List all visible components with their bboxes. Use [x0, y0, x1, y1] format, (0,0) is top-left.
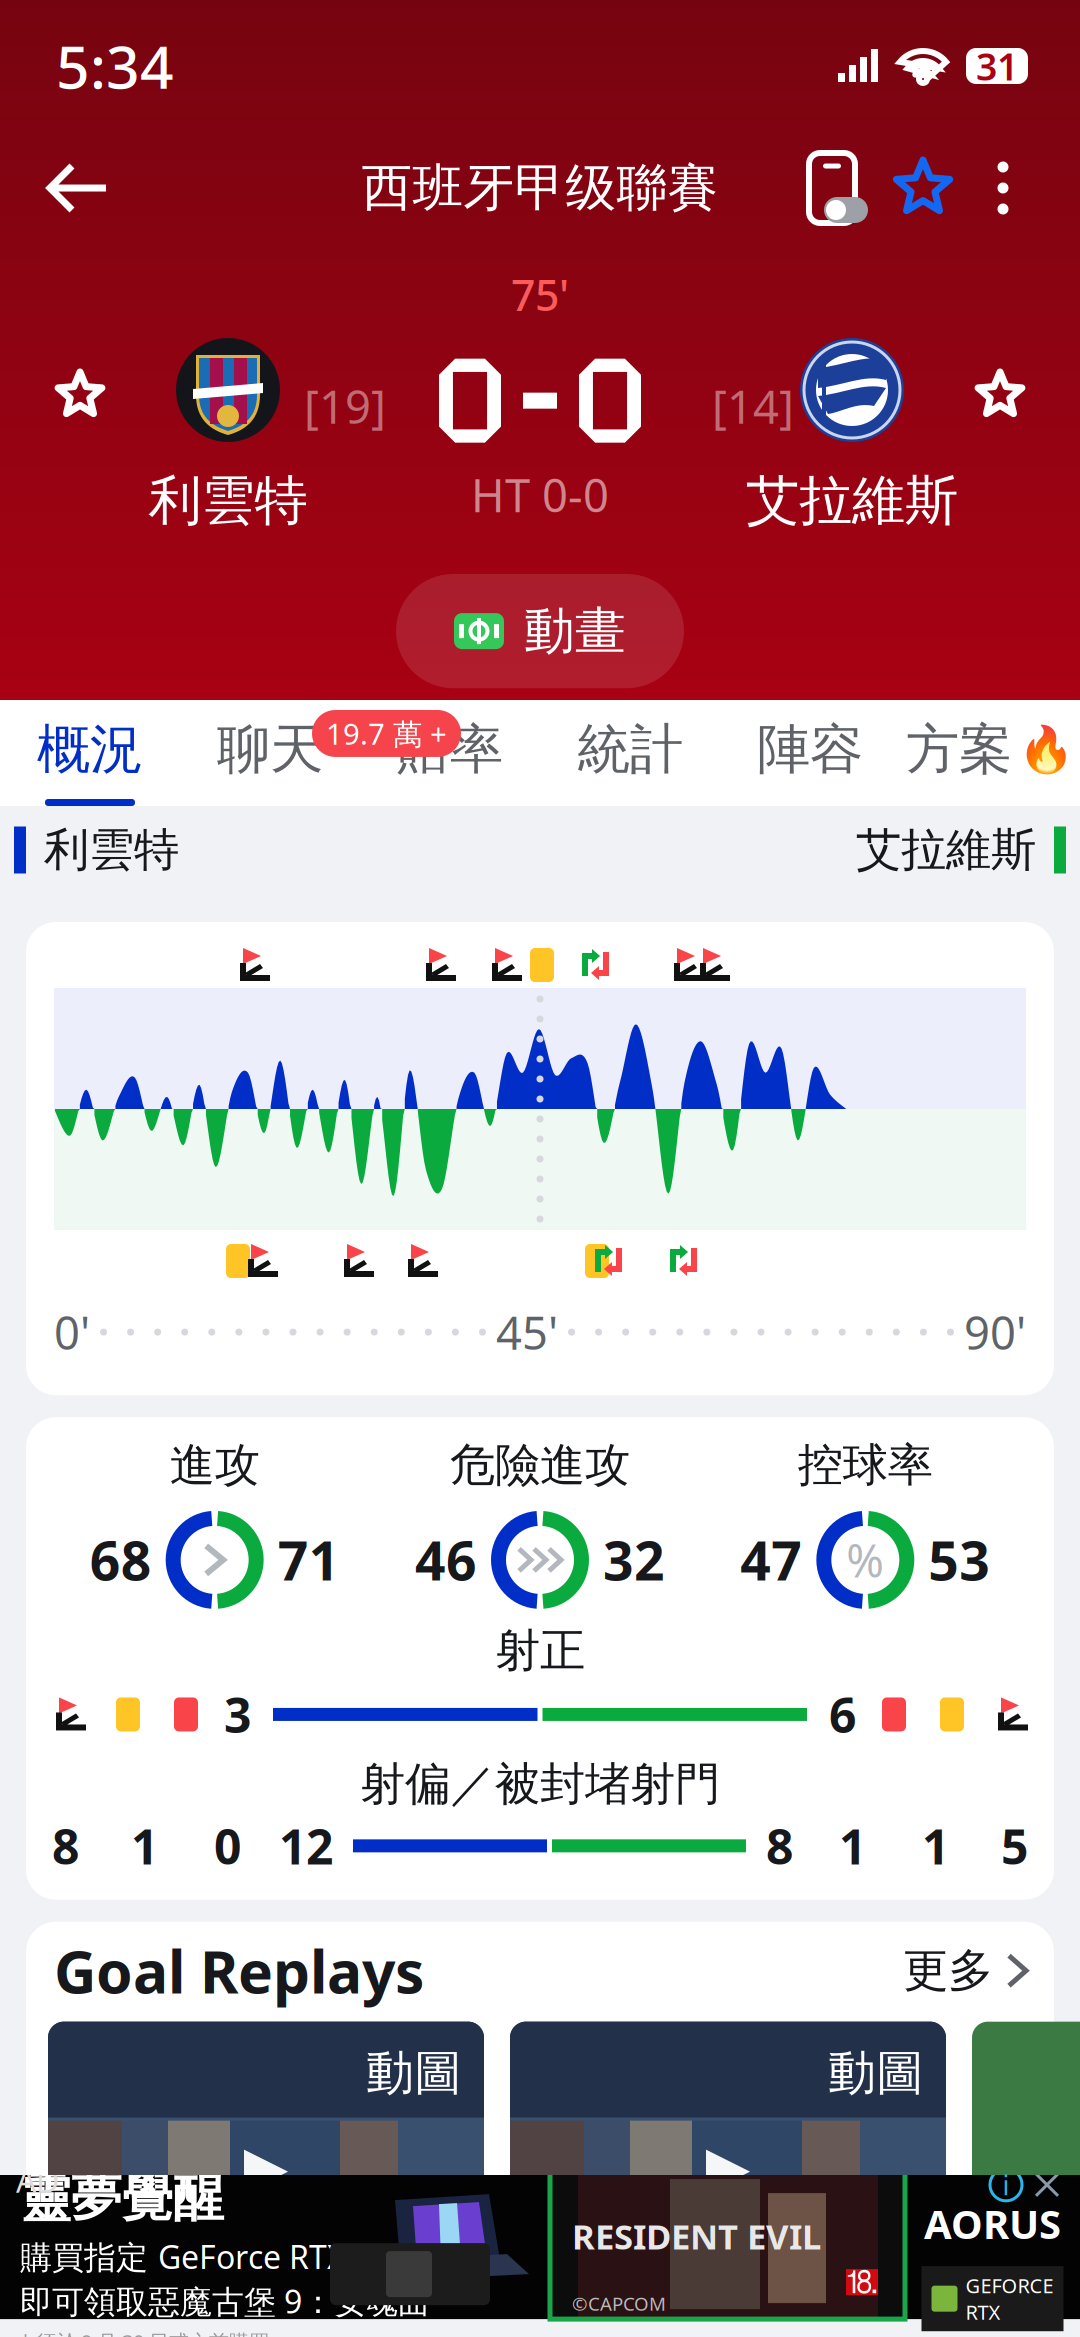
button[interactable]: Favourite Alaves: [954, 350, 1046, 440]
staticText: 利雲特: [44, 822, 179, 878]
staticText: 進攻: [170, 1437, 260, 1493]
staticText: 陣容: [757, 717, 863, 782]
staticText: HT 0-0: [471, 465, 609, 525]
staticText: 控球率: [798, 1437, 933, 1493]
staticText: 1: [839, 1814, 866, 1878]
staticText: 賠率: [397, 717, 503, 782]
staticText: 購買指定 GeForce RTX 50 系列: [20, 2235, 462, 2278]
staticText: 3: [224, 1683, 251, 1746]
staticText: 45': [496, 1302, 558, 1362]
button[interactable]: Back: [28, 140, 128, 236]
staticText: 8: [766, 1814, 793, 1878]
button[interactable]: Favourite: [882, 148, 964, 228]
staticText: 32: [603, 1524, 665, 1595]
staticText: 53: [928, 1524, 990, 1595]
staticText: %: [846, 1530, 884, 1590]
staticText: 艾拉維斯: [856, 822, 1036, 878]
staticText: Goal Replays: [54, 1932, 424, 2010]
staticText: 31: [976, 41, 1018, 91]
staticText: 19.7 萬 +: [326, 714, 447, 753]
staticText: 艾拉維斯: [746, 468, 958, 533]
button[interactable]: 更多: [903, 1943, 1026, 1998]
staticText: 聊天: [217, 717, 323, 782]
staticText: 6: [829, 1683, 856, 1746]
staticText: 🔥: [1018, 724, 1074, 775]
button[interactable]: 動畫: [396, 574, 684, 688]
staticText: 更多: [903, 1943, 993, 1998]
button[interactable]: 動圖: [48, 2022, 484, 2278]
button[interactable]: Screen setting: [778, 148, 872, 228]
staticText: 12: [279, 1814, 333, 1878]
staticText: 射偏／被封堵射門: [360, 1756, 720, 1812]
button[interactable]: 陣容: [720, 700, 900, 806]
button[interactable]: 賠率: [360, 700, 540, 806]
staticText: 75': [511, 266, 569, 323]
staticText: * 須於 9 月 30 日或之前購買: [20, 2328, 269, 2337]
staticText: [14]: [712, 376, 794, 436]
staticText: [19]: [304, 376, 386, 436]
staticText: 射正: [495, 1623, 585, 1679]
staticText: 0: [214, 1814, 241, 1878]
staticText: 1: [922, 1814, 949, 1878]
staticText: 危險進攻: [450, 1437, 630, 1493]
button[interactable]: 概況: [0, 700, 180, 806]
staticText: 5: [1001, 1814, 1028, 1878]
staticText: 統計: [577, 717, 683, 782]
staticText: 動圖: [828, 2044, 924, 2103]
staticText: 動圖: [366, 2044, 462, 2103]
staticText: 90': [964, 1302, 1026, 1362]
button[interactable]: 方案: [900, 700, 1080, 806]
staticText: 47: [740, 1524, 802, 1595]
staticText: AORUS: [924, 2197, 1061, 2250]
staticText: 8: [52, 1814, 79, 1878]
staticText: 1: [131, 1814, 158, 1878]
staticText: 西班牙甲级聯賽: [361, 157, 718, 219]
staticText: ⒙: [846, 2262, 878, 2302]
staticText: 利雲特: [148, 468, 307, 533]
staticText: 概況: [37, 717, 143, 782]
staticText: AD: [16, 2159, 59, 2202]
staticText: 靈夢覺醒: [20, 2167, 224, 2229]
button[interactable]: 聊天: [180, 700, 360, 806]
staticText: 方案: [906, 717, 1012, 782]
staticText: 0': [54, 1302, 90, 1362]
staticText: 46: [415, 1524, 477, 1595]
staticText: 即可領取惡魔古堡 9：安魂曲 *: [20, 2280, 456, 2322]
button[interactable]: 統計: [540, 700, 720, 806]
button[interactable]: 動圖: [510, 2022, 946, 2278]
staticText: i: [1002, 2167, 1009, 2202]
staticText: 68: [90, 1524, 152, 1595]
button[interactable]: More options: [974, 153, 1032, 223]
staticText: RESIDENT EVIL: [572, 2213, 821, 2259]
staticText: GEFORCE RTX: [965, 2272, 1053, 2325]
staticText: 5:34: [56, 27, 174, 105]
staticText: 動畫: [524, 600, 626, 662]
staticText: ©CAPCOM: [572, 2291, 666, 2316]
staticText: 71: [278, 1524, 340, 1595]
button[interactable]: Favourite Levante: [34, 350, 126, 440]
